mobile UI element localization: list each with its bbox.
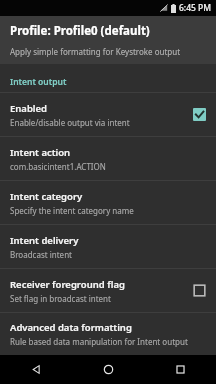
- button[interactable]: Back: [0, 355, 72, 384]
- staticText: Intent action: [10, 146, 71, 159]
- button[interactable]: Home: [72, 355, 144, 384]
- button[interactable]: Enabled: [0, 93, 216, 136]
- staticText: Intent delivery: [10, 234, 79, 247]
- staticText: Advanced data formatting: [10, 321, 132, 334]
- staticText: Broadcast intent: [10, 249, 72, 260]
- button[interactable]: Intent category: [0, 181, 216, 224]
- button[interactable]: Intent delivery: [0, 225, 216, 268]
- staticText: com.basicintent1.ACTION: [10, 161, 106, 172]
- staticText: Intent category: [10, 190, 83, 203]
- button[interactable]: Recent apps: [144, 355, 216, 384]
- staticText: Enable/disable output via intent: [10, 117, 130, 128]
- button[interactable]: Advanced data formatting: [0, 313, 216, 355]
- button[interactable]: Intent action: [0, 137, 216, 180]
- staticText: Apply simple formatting for Keystroke ou…: [10, 46, 181, 57]
- staticText: Profile: Profile0 (default): [10, 23, 150, 39]
- staticText: Set flag in broadcast intent: [10, 293, 111, 304]
- staticText: Rule based data manipulation for Intent …: [10, 336, 188, 347]
- staticText: Specify the intent category name: [10, 205, 134, 216]
- staticText: Intent output: [10, 76, 67, 88]
- staticText: Receiver foreground flag: [10, 278, 125, 291]
- button[interactable]: Receiver foreground flag: [0, 269, 216, 312]
- staticText: Enabled: [10, 102, 48, 115]
- staticText: 6:45 PM: [179, 2, 212, 14]
